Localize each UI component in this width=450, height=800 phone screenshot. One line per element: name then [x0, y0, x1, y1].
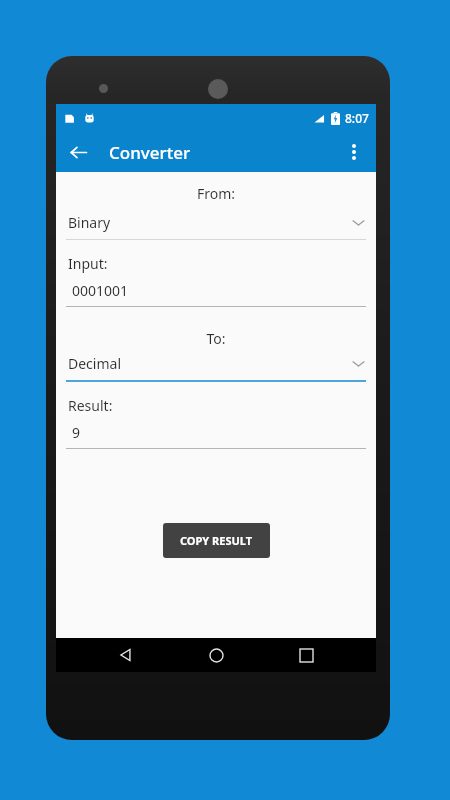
staticText: Converter [109, 141, 191, 164]
staticText: From: [56, 184, 376, 203]
staticText: 8:07 [345, 110, 369, 126]
staticText: COPY RESULT [180, 533, 253, 548]
button[interactable]: COPY RESULT [163, 523, 270, 558]
button[interactable]: Home [196, 638, 236, 672]
staticText: 9 [72, 423, 81, 442]
staticText: To: [56, 329, 376, 348]
button[interactable]: Back [60, 134, 96, 170]
button[interactable]: 9 [66, 423, 366, 449]
button[interactable]: 0001001 [66, 281, 366, 307]
button[interactable]: Decimal [66, 354, 366, 382]
staticText: Result: [68, 396, 113, 415]
staticText: 0001001 [72, 281, 129, 300]
button[interactable]: More options [336, 134, 372, 170]
staticText: Binary [68, 213, 353, 232]
button[interactable]: Recent apps [286, 638, 326, 672]
button[interactable]: Binary [66, 213, 366, 240]
button[interactable]: Back [106, 638, 146, 672]
staticText: Decimal [68, 354, 353, 373]
staticText: Input: [68, 254, 108, 273]
